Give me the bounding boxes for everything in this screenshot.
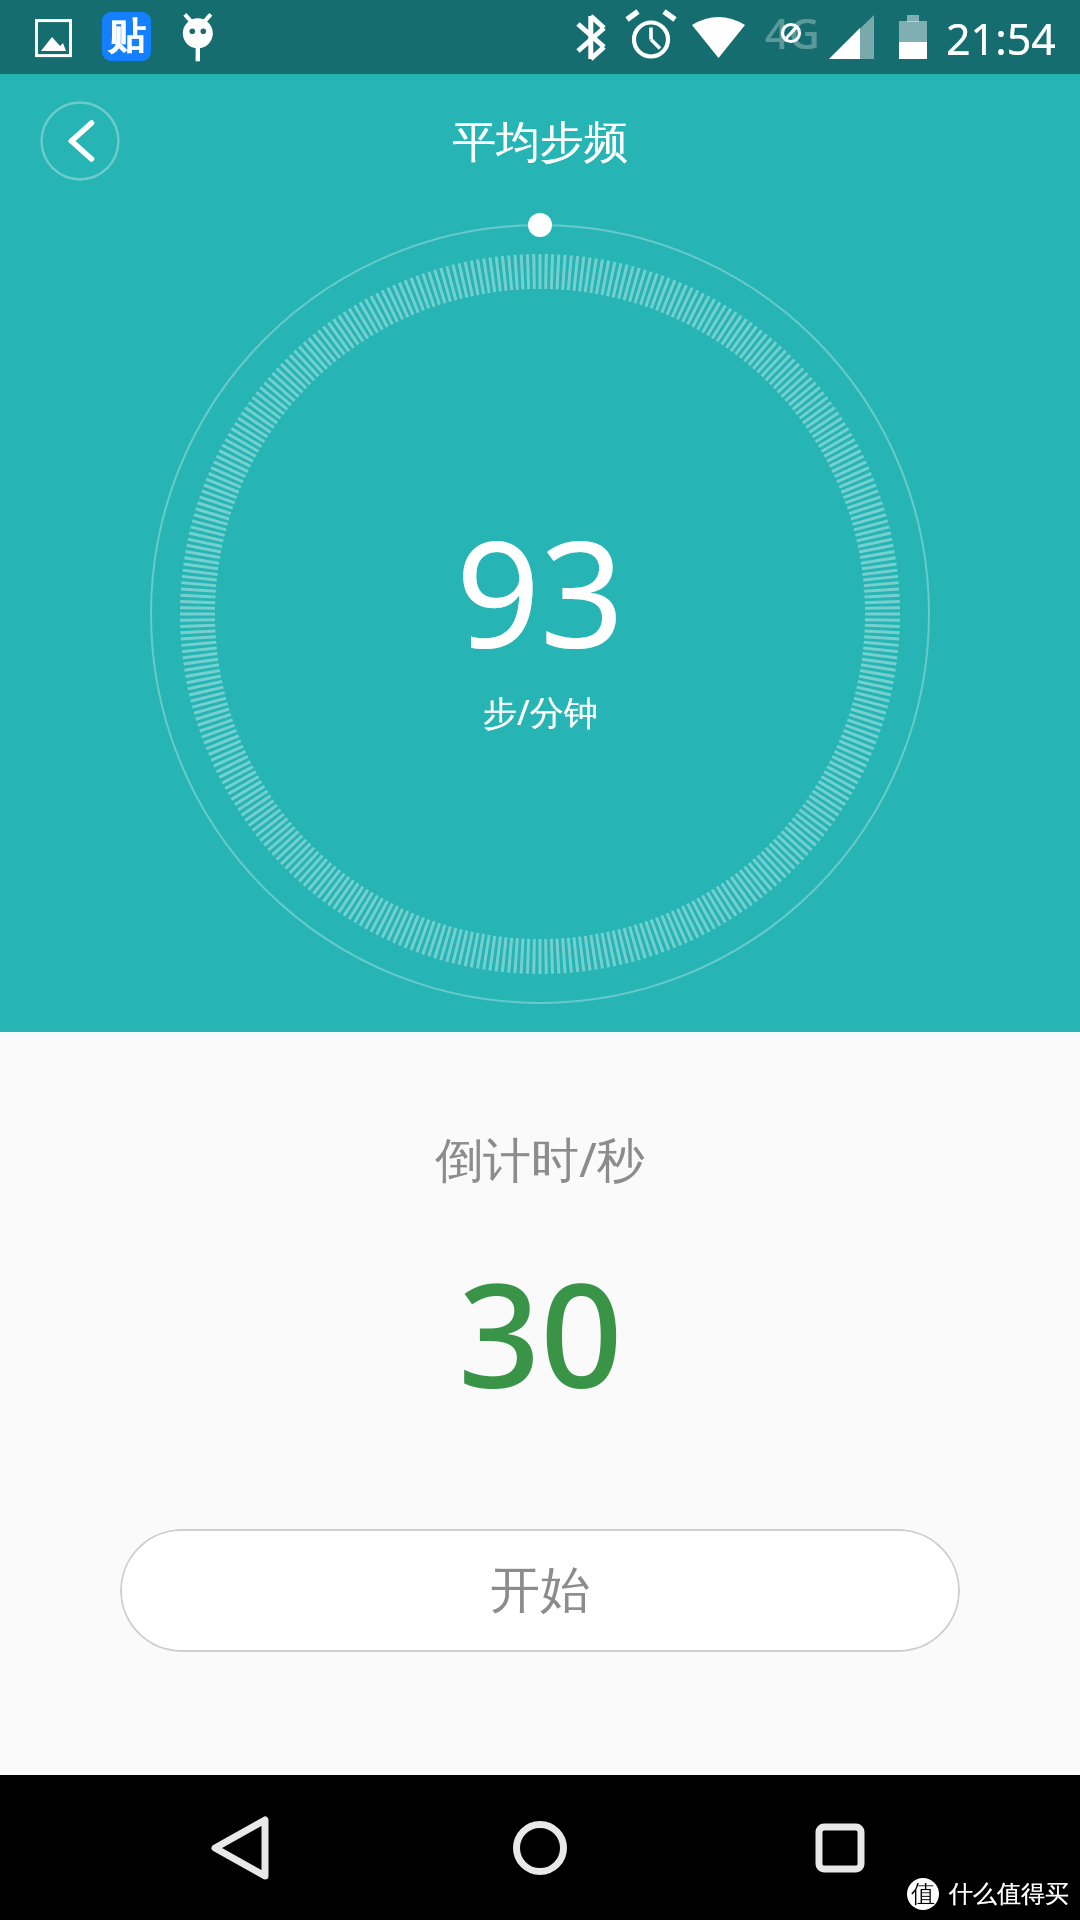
staticText: 93 (456, 491, 625, 691)
staticText: 贴 (108, 13, 145, 60)
button[interactable]: Recents (790, 1798, 890, 1898)
staticText: 4G (765, 4, 820, 61)
button[interactable]: 开始 (120, 1529, 960, 1652)
staticText: 步/分钟 (483, 689, 598, 735)
staticText: 倒计时/秒 (435, 1126, 645, 1192)
button[interactable]: Home (490, 1798, 590, 1898)
staticText: 开始 (490, 1559, 590, 1622)
staticText: 值 (911, 1879, 935, 1909)
button[interactable]: Back (40, 101, 120, 181)
staticText: 平均步频 (452, 115, 628, 170)
staticText: 21:54 (946, 9, 1056, 68)
staticText: 30 (458, 1234, 623, 1430)
staticText: 什么值得买 (949, 1879, 1069, 1909)
button[interactable]: Back (190, 1798, 290, 1898)
